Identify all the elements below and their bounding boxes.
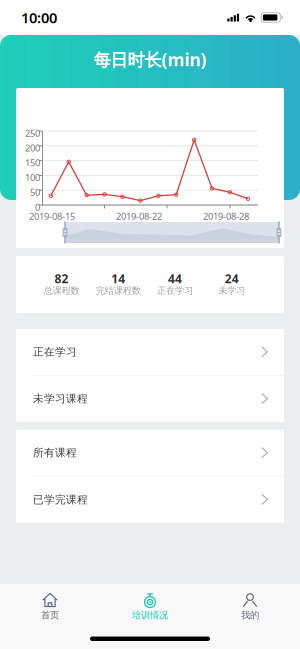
button[interactable]: 培训情况 — [100, 587, 200, 626]
staticText: 总课程数 — [43, 285, 79, 296]
button[interactable]: 未学习课程 — [16, 376, 284, 422]
staticText: 0 — [35, 201, 40, 213]
staticText: 2019-08-15 — [29, 210, 75, 222]
staticText: 24 — [225, 270, 239, 286]
staticText: 未学习课程 — [33, 392, 88, 405]
staticText: 200 — [25, 142, 40, 154]
staticText: 50 — [30, 186, 40, 198]
staticText: 100 — [25, 171, 40, 184]
button[interactable]: 已学完课程 — [16, 477, 284, 523]
staticText: 所有课程 — [33, 446, 77, 459]
staticText: 250 — [25, 127, 40, 139]
staticText: 150 — [25, 156, 40, 169]
button[interactable]: 所有课程 — [16, 430, 284, 476]
staticText: 2019-08-22 — [116, 210, 162, 222]
staticText: 未学习 — [218, 285, 245, 296]
staticText: 2019-08-28 — [203, 210, 249, 222]
staticText: 我的 — [241, 609, 259, 621]
staticText: 培训情况 — [132, 609, 168, 621]
staticText: 首页 — [41, 609, 59, 621]
staticText: 完结课程数 — [96, 285, 141, 296]
staticText: 10:00 — [21, 8, 57, 27]
button[interactable]: 我的 — [200, 587, 300, 626]
staticText: 正在学习 — [157, 285, 193, 296]
staticText: 已学完课程 — [33, 493, 88, 506]
button[interactable]: 首页 — [0, 587, 100, 626]
staticText: 82 — [54, 270, 68, 286]
staticText: 14 — [111, 270, 125, 286]
staticText: 44 — [168, 270, 182, 286]
staticText: 正在学习 — [33, 345, 77, 359]
staticText: 每日时长(min) — [93, 48, 206, 71]
button[interactable]: 正在学习 — [16, 329, 284, 375]
